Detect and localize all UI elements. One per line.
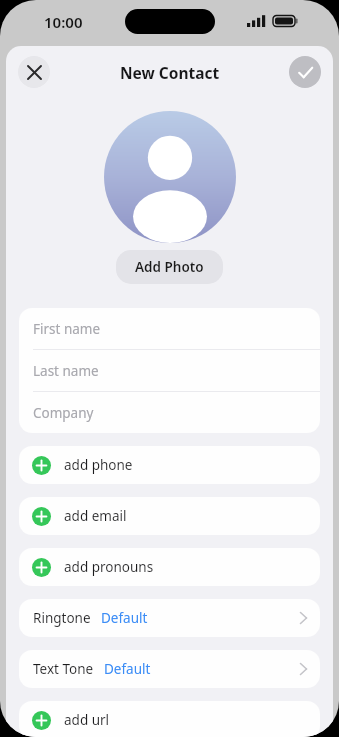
- button[interactable]: add url: [19, 701, 320, 737]
- button[interactable]: Text Tone: [19, 650, 320, 688]
- staticText: New Contact: [120, 62, 220, 83]
- staticText: Text Tone: [33, 660, 94, 678]
- button[interactable]: add pronouns: [19, 548, 320, 586]
- staticText: Default: [101, 609, 148, 627]
- staticText: 10:00: [44, 12, 83, 32]
- staticText: add pronouns: [64, 558, 154, 576]
- staticText: Ringtone: [33, 609, 91, 627]
- button[interactable]: Ringtone: [19, 599, 320, 637]
- staticText: add phone: [64, 456, 133, 474]
- staticText: add url: [64, 711, 110, 729]
- staticText: add email: [64, 507, 127, 525]
- button[interactable]: Close: [18, 56, 50, 88]
- staticText: First name: [33, 320, 101, 338]
- button[interactable]: Add Photo: [116, 250, 223, 284]
- button[interactable]: add email: [19, 497, 320, 535]
- staticText: Company: [33, 404, 94, 422]
- staticText: Last name: [33, 362, 99, 380]
- button[interactable]: Company: [19, 392, 320, 433]
- button[interactable]: Done: [289, 56, 321, 88]
- button[interactable]: First name: [19, 308, 320, 350]
- button[interactable]: Last name: [19, 350, 320, 392]
- staticText: Default: [104, 660, 151, 678]
- staticText: Add Photo: [135, 258, 204, 276]
- button[interactable]: add phone: [19, 446, 320, 484]
